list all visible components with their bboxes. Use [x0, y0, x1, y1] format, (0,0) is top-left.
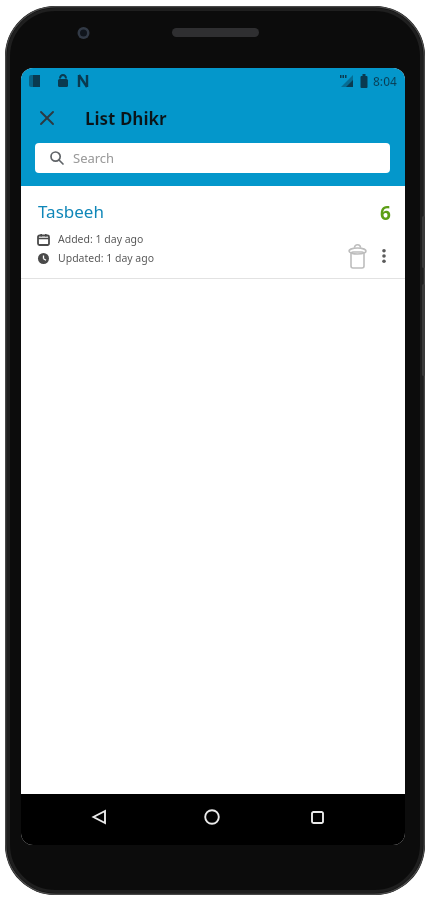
button[interactable] — [192, 797, 232, 837]
button[interactable] — [79, 797, 119, 837]
button[interactable] — [297, 797, 337, 837]
button[interactable]: Tasbeeh — [21, 186, 405, 279]
staticText: List Dhikr — [85, 107, 167, 130]
staticText: 8:04 — [373, 73, 397, 89]
staticText: 6 — [380, 200, 391, 226]
staticText: Search — [73, 149, 115, 167]
staticText: Updated: 1 day ago — [58, 251, 155, 265]
button[interactable] — [344, 243, 370, 269]
button[interactable] — [33, 104, 61, 132]
button[interactable] — [377, 243, 391, 269]
staticText: Tasbeeh — [38, 200, 104, 223]
button[interactable]: Search — [35, 143, 390, 173]
staticText: Added: 1 day ago — [58, 232, 144, 246]
